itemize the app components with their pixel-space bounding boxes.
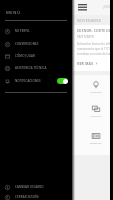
button[interactable]: CÓMO JUGAR [0,50,72,62]
button[interactable]: VER MÁS [77,61,98,65]
button[interactable]: Open navigation menu [78,4,87,13]
button[interactable]: NOTIFICACIONES [0,75,72,87]
staticText: CÓMO JUGAR [15,54,35,58]
button[interactable]: CONSULTAS [73,103,113,119]
staticText: CONSULTAS [90,115,102,118]
button[interactable]: MI PERFIL [0,25,72,37]
staticText: MENÚ [6,10,21,16]
staticText: ASISTENCIA TÉCNICA [15,66,47,70]
staticText: Estimados Socios les informamos nuevamen… [77,42,113,56]
button[interactable]: ASISTENCIA TÉCNICA [0,62,72,74]
button[interactable]: CREDENCIAL [73,130,113,146]
staticText: NOVEDADES [90,91,102,94]
staticText: VER MÁS [77,61,94,65]
button[interactable]: CAMBIAR USUARIO [0,181,72,193]
staticText: MI PERFIL [15,29,30,33]
staticText: NOTIFICACIONES [15,79,41,83]
staticText: ¡HOLA, JUAN! [103,4,113,10]
staticText: EDENOR: CORTE DE LUZ PROG. [77,28,113,32]
button[interactable]: NOVEDADES [73,79,113,95]
staticText: CONVERSIONES [15,42,39,46]
button[interactable]: EDENOR: CORTE DE LUZ PROG. [73,25,113,71]
staticText: CREDENCIAL [90,142,102,145]
staticText: NOVEDADES [77,18,102,23]
button[interactable]: Notifications toggle [57,78,68,84]
staticText: 16/11/2019 [77,35,94,39]
staticText: CAMBIAR USUARIO [15,185,44,189]
button[interactable]: CERRAR SESIÓN [0,191,72,200]
button[interactable]: CONVERSIONES [0,38,72,50]
staticText: CERRAR SESIÓN [15,195,39,199]
